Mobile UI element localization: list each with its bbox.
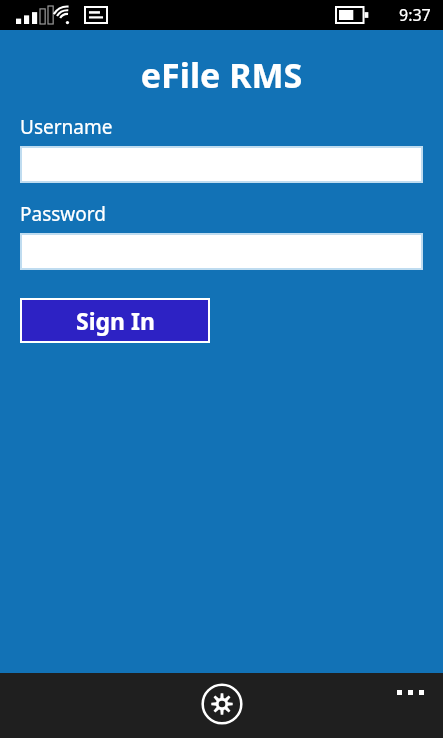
staticText: eFile RMS xyxy=(0,52,443,98)
button[interactable]: Sign In xyxy=(22,300,208,341)
staticText: Sign In xyxy=(76,305,155,336)
staticText: Username xyxy=(20,114,113,140)
button[interactable]: Settings xyxy=(198,680,246,728)
staticText: Password xyxy=(20,201,106,227)
button[interactable]: More options xyxy=(387,681,433,703)
staticText: 9:37 xyxy=(399,4,431,26)
